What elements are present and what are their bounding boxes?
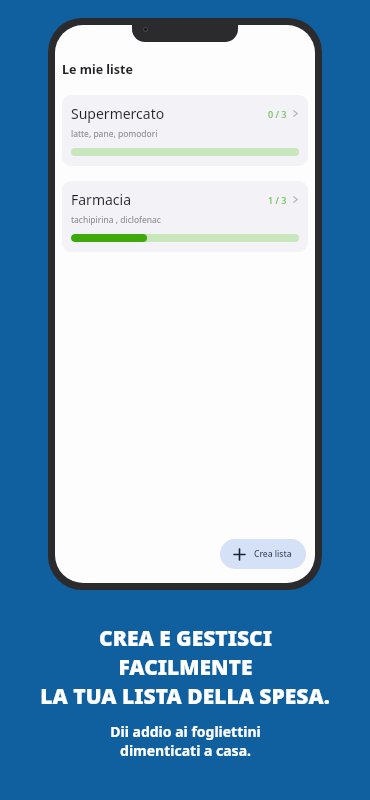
button[interactable]: Crea lista bbox=[220, 539, 306, 569]
staticText: latte, pane, pomodori bbox=[71, 128, 158, 140]
button[interactable]: Farmacia bbox=[62, 181, 308, 252]
staticText: Le mie liste bbox=[62, 61, 133, 78]
staticText: LA TUA LISTA DELLA SPESA. bbox=[40, 682, 330, 711]
staticText: 0 / 3 bbox=[268, 108, 287, 120]
staticText: dimenticati a casa. bbox=[120, 741, 251, 760]
staticText: Crea lista bbox=[254, 548, 292, 560]
button[interactable]: Supermercato bbox=[62, 95, 308, 166]
staticText: tachipirina , diclofenac bbox=[71, 214, 161, 226]
staticText: CREA E GESTISCI bbox=[99, 624, 272, 653]
staticText: Farmacia bbox=[71, 190, 132, 209]
staticText: Supermercato bbox=[71, 104, 165, 123]
staticText: Dii addio ai fogliettini bbox=[110, 722, 261, 741]
staticText: 1 / 3 bbox=[268, 194, 287, 206]
staticText: FACILMENTE bbox=[118, 653, 253, 682]
